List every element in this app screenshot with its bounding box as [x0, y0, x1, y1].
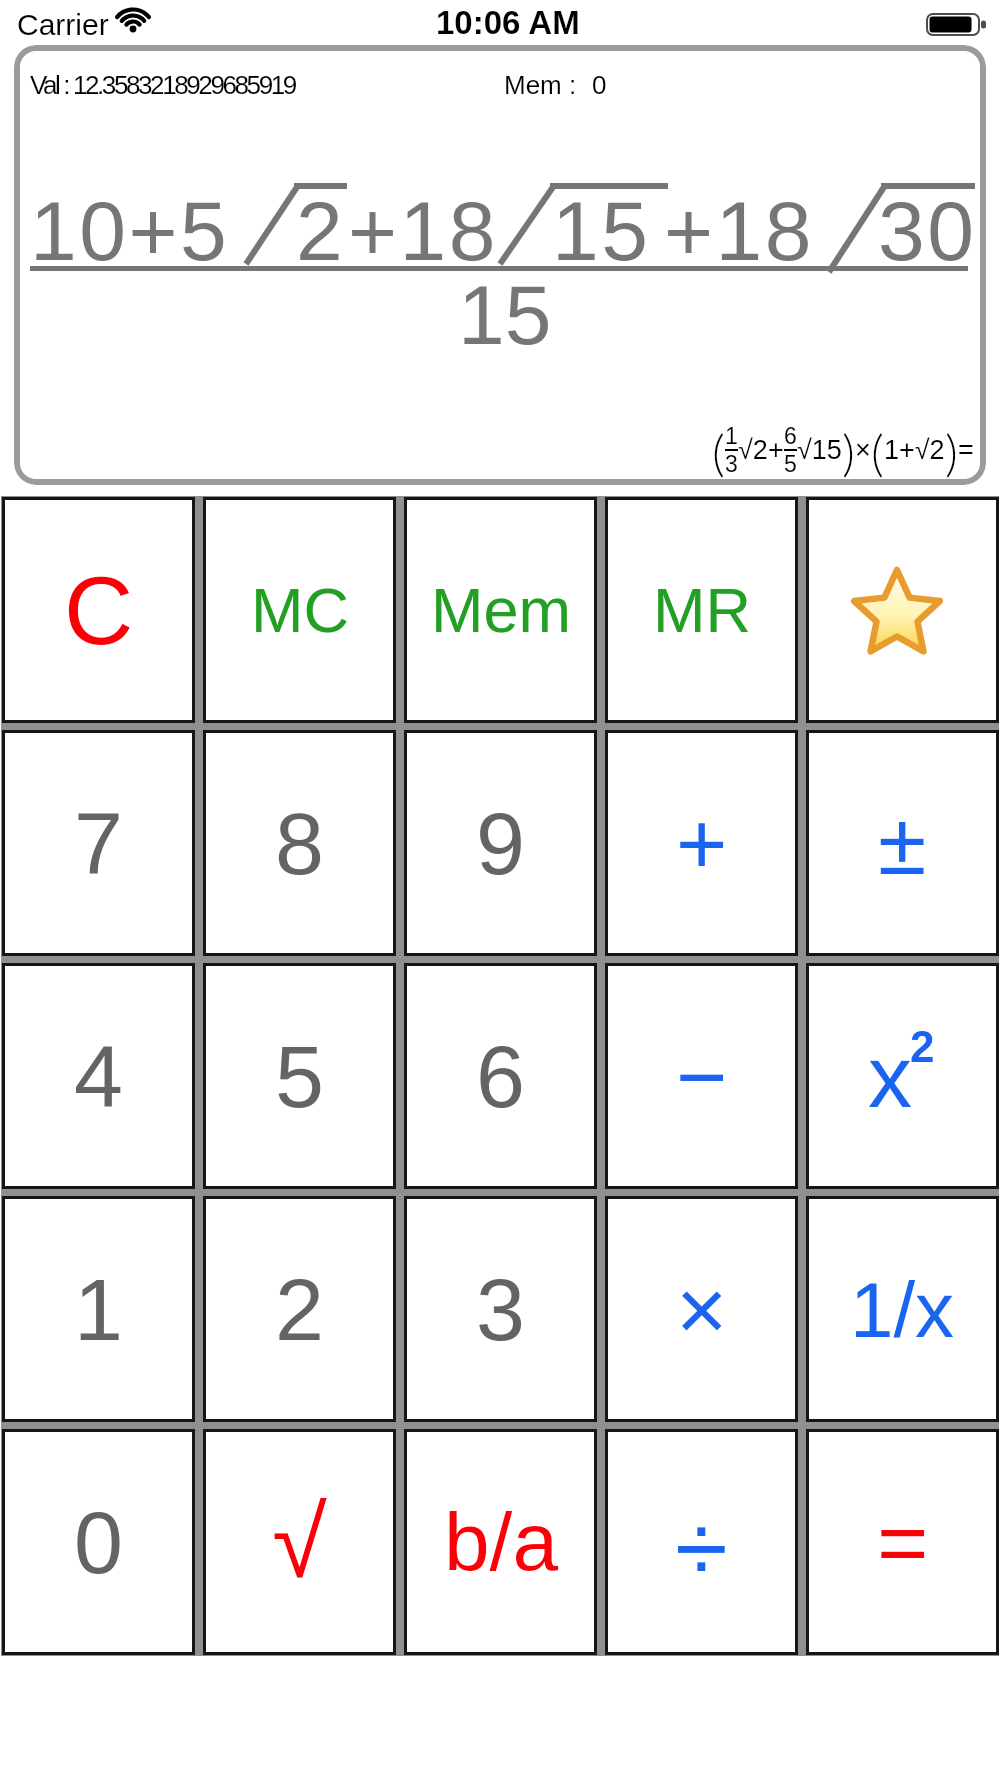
- button[interactable]: 1: [2, 1196, 195, 1422]
- button[interactable]: 2: [203, 1196, 396, 1422]
- staticText: √15: [797, 435, 842, 465]
- staticText: 1/x: [850, 1266, 955, 1353]
- button[interactable]: MC: [203, 497, 396, 723]
- staticText: 4: [74, 1027, 123, 1125]
- staticText: ×: [676, 1260, 728, 1358]
- staticText: +: [676, 794, 728, 892]
- button[interactable]: 7: [2, 730, 195, 956]
- staticText: ÷: [675, 1495, 728, 1602]
- button[interactable]: 9: [404, 730, 597, 956]
- staticText: 10+5: [30, 184, 230, 278]
- staticText: b/a: [444, 1496, 558, 1588]
- staticText: +18: [348, 184, 498, 278]
- staticText: 5: [784, 451, 797, 477]
- staticText: 6: [784, 423, 797, 449]
- staticText: =: [877, 1493, 929, 1591]
- staticText: √: [272, 1486, 327, 1598]
- staticText: √2: [738, 435, 768, 465]
- staticText: 3: [725, 451, 738, 477]
- staticText: +18: [664, 184, 814, 278]
- staticText: 0: [592, 70, 607, 99]
- staticText: 1: [725, 423, 738, 449]
- button[interactable]: Mem: [404, 497, 597, 723]
- button[interactable]: 3: [404, 1196, 597, 1422]
- staticText: Mem :: [504, 70, 577, 99]
- staticText: 7: [74, 794, 123, 892]
- button[interactable]: 5: [203, 963, 396, 1189]
- staticText: MC: [251, 575, 349, 645]
- button[interactable]: −: [605, 963, 798, 1189]
- button[interactable]: √: [203, 1429, 396, 1655]
- staticText: Mem: [431, 575, 571, 645]
- button[interactable]: 6: [404, 963, 597, 1189]
- staticText: 6: [476, 1027, 525, 1125]
- button[interactable]: ÷: [605, 1429, 798, 1655]
- staticText: x: [868, 1027, 912, 1125]
- staticText: 2: [275, 1260, 324, 1358]
- button[interactable]: 1/x: [806, 1196, 999, 1422]
- staticText: 15: [458, 268, 552, 362]
- staticText: 0: [74, 1493, 123, 1591]
- staticText: Carrier: [17, 8, 109, 42]
- button[interactable]: 0: [2, 1429, 195, 1655]
- staticText: 5: [275, 1027, 324, 1125]
- staticText: 1+√2: [884, 435, 945, 465]
- button[interactable]: MR: [605, 497, 798, 723]
- staticText: 15: [552, 184, 651, 278]
- staticText: (: [712, 422, 725, 478]
- staticText: ±: [878, 794, 927, 892]
- staticText: −: [676, 1027, 728, 1125]
- staticText: 2: [910, 1022, 935, 1071]
- staticText: Val : 12.3583218929685919: [30, 70, 295, 99]
- staticText: =: [958, 435, 974, 465]
- button[interactable]: x: [806, 963, 999, 1189]
- staticText: +: [768, 435, 784, 465]
- staticText: MR: [653, 575, 751, 645]
- staticText: 2: [296, 184, 346, 278]
- staticText: 1: [74, 1260, 123, 1358]
- button[interactable]: ×: [605, 1196, 798, 1422]
- staticText: 10:06 AM: [436, 4, 580, 41]
- staticText: C: [64, 557, 134, 664]
- staticText: 8: [275, 794, 324, 892]
- button[interactable]: C: [2, 497, 195, 723]
- staticText: ): [945, 422, 958, 478]
- button[interactable]: b/a: [404, 1429, 597, 1655]
- staticText: 30: [878, 184, 977, 278]
- staticText: 9: [476, 794, 525, 892]
- button[interactable]: =: [806, 1429, 999, 1655]
- button[interactable]: 8: [203, 730, 396, 956]
- button[interactable]: [806, 497, 999, 723]
- button[interactable]: 4: [2, 963, 195, 1189]
- staticText: 3: [476, 1260, 525, 1358]
- staticText: ): [842, 422, 855, 478]
- button[interactable]: +: [605, 730, 798, 956]
- staticText: (: [871, 422, 884, 478]
- button[interactable]: ±: [806, 730, 999, 956]
- staticText: ×: [855, 435, 871, 465]
